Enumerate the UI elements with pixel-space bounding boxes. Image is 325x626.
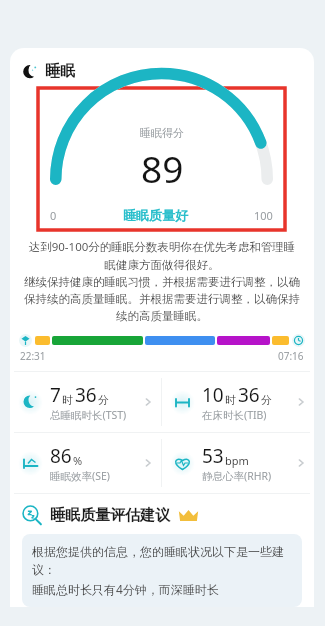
staticText: 36: [238, 382, 260, 408]
staticText: 86: [50, 443, 72, 469]
other: 总睡眠时长(TST): [141, 395, 155, 409]
staticText: 100: [254, 208, 273, 223]
staticText: 在床时长(TIB): [202, 408, 267, 422]
other: 睡眠效率(SE): [141, 456, 155, 470]
staticText: bpm: [225, 453, 249, 468]
staticText: 睡眠效率(SE): [50, 469, 110, 483]
staticText: 07:16: [278, 349, 304, 363]
staticText: 89: [141, 143, 184, 193]
other: 在床时长(TIB): [294, 395, 308, 409]
staticText: 0: [50, 208, 57, 223]
staticText: 继续保持健康的睡眠习惯，并根据需要进行调整，以确保持续的高质量睡眠。并根据需要进…: [24, 275, 300, 323]
staticText: 时: [225, 393, 236, 407]
staticText: 睡眠质量好: [123, 207, 188, 223]
other: 静息心率(RHR): [294, 456, 308, 470]
staticText: %: [73, 453, 83, 468]
staticText: 睡眠: [45, 62, 75, 81]
button[interactable]: 53: [162, 433, 314, 493]
staticText: 7: [50, 382, 61, 408]
staticText: 总睡眠时长(TST): [50, 408, 127, 422]
staticText: 睡眠得分: [140, 126, 184, 140]
staticText: 睡眠质量评估建议: [50, 506, 170, 525]
button[interactable]: 7: [10, 372, 161, 432]
staticText: 达到90-100分的睡眠分数表明你在优先考虑和管理睡眠健康方面做得很好。: [24, 239, 300, 272]
staticText: 53: [202, 443, 224, 469]
staticText: 分: [98, 393, 109, 407]
staticText: 根据您提供的信息，您的睡眠状况以下是一些建议： 睡眠总时长只有4分钟，而深睡时长: [32, 544, 292, 597]
staticText: 22:31: [20, 349, 46, 363]
staticText: 36: [75, 382, 97, 408]
button[interactable]: 10: [162, 372, 314, 432]
staticText: 时: [62, 393, 73, 407]
button[interactable]: 睡眠质量评估建议: [22, 505, 314, 526]
staticText: 静息心率(RHR): [202, 469, 272, 483]
staticText: 10: [202, 382, 224, 408]
staticText: 分: [261, 393, 272, 407]
button[interactable]: 86: [10, 433, 161, 493]
